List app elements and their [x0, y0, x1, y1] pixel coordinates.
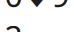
staticText: 0♥92 — [4, 0, 69, 32]
